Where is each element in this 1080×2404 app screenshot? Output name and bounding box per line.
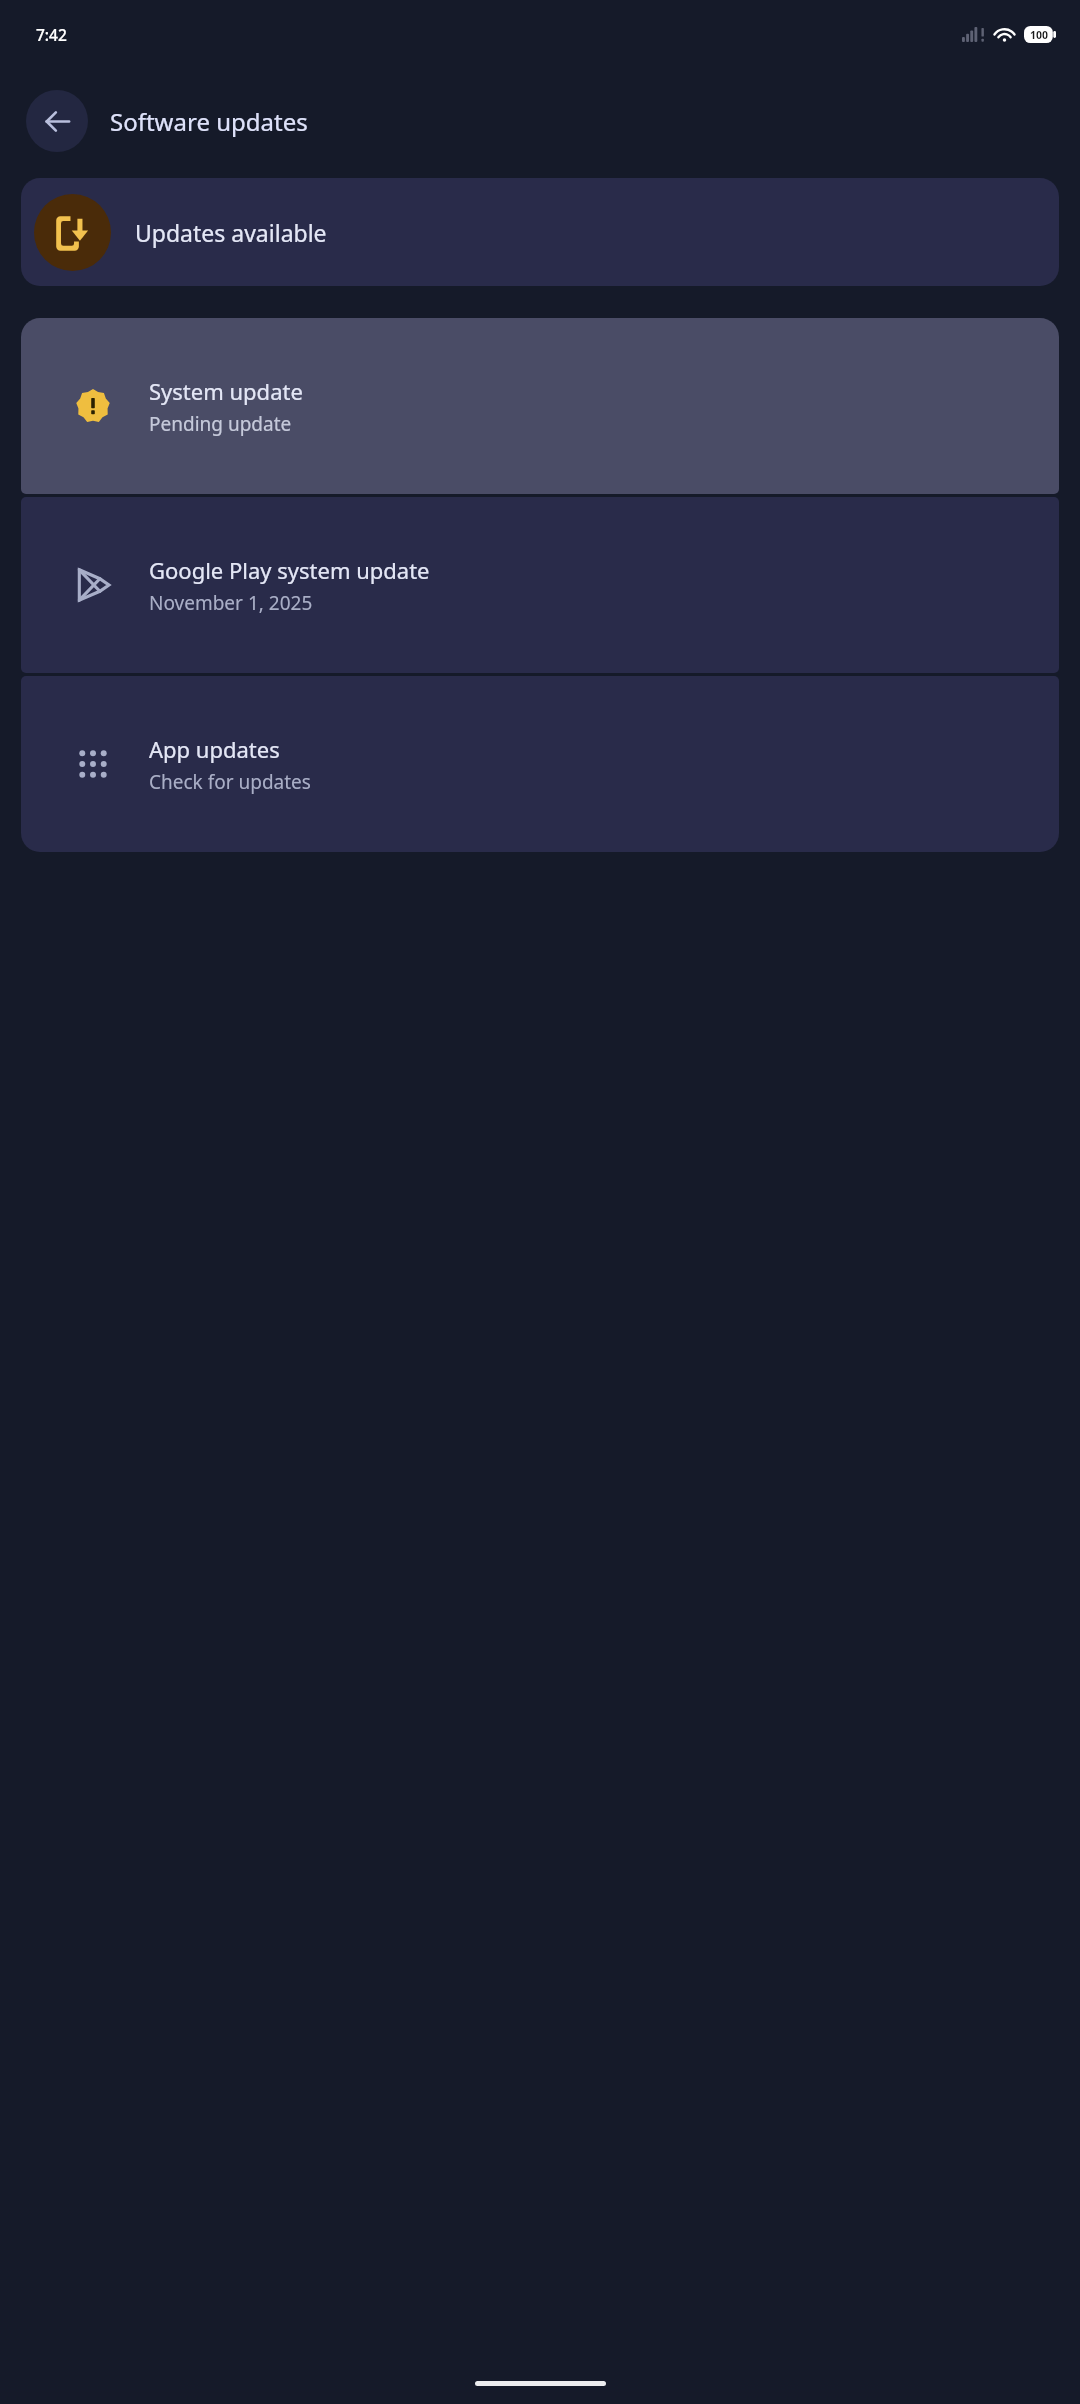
staticText: Google Play system update: [149, 555, 430, 585]
staticText: Pending update: [149, 411, 292, 437]
button[interactable]: System update: [21, 318, 1059, 494]
staticText: 7:42: [36, 24, 67, 45]
button[interactable]: Updates available: [21, 178, 1059, 286]
button[interactable]: Google Play system update: [21, 497, 1059, 673]
staticText: System update: [149, 376, 303, 406]
staticText: Software updates: [110, 105, 308, 138]
button[interactable]: Back: [26, 90, 88, 152]
staticText: November 1, 2025: [149, 590, 313, 616]
staticText: Updates available: [135, 217, 327, 248]
staticText: Check for updates: [149, 769, 311, 795]
button[interactable]: App updates: [21, 676, 1059, 852]
staticText: App updates: [149, 734, 280, 764]
staticText: 100: [1030, 28, 1049, 42]
